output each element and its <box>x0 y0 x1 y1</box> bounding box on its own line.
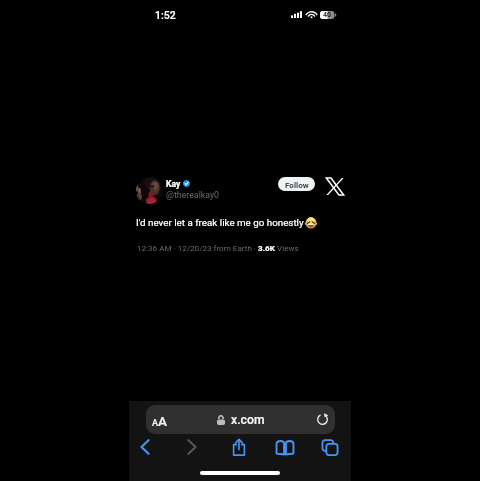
staticText: A <box>152 418 158 429</box>
button[interactable]: Tabs <box>319 436 341 458</box>
staticText: @therealkay0 <box>166 190 220 200</box>
staticText: A <box>158 413 167 429</box>
staticText: 3.6K <box>258 243 275 251</box>
button[interactable]: Reload <box>316 413 329 426</box>
staticText: x.com <box>225 413 265 427</box>
button[interactable]: Back <box>134 436 156 458</box>
staticText: Follow <box>285 180 309 189</box>
button[interactable]: X <box>326 178 344 195</box>
staticText: 1:52 <box>155 9 176 21</box>
button[interactable]: Follow <box>278 177 315 191</box>
button[interactable]: A <box>146 405 335 434</box>
button[interactable]: Forward <box>181 436 203 458</box>
button[interactable]: Share <box>228 436 250 458</box>
staticText: Kay <box>166 179 181 189</box>
staticText: Views <box>275 243 299 251</box>
staticText: 40 <box>323 11 332 19</box>
staticText: I'd never let a freak like me go honestl… <box>136 217 304 228</box>
staticText: 12:36 AM · 12/20/23 from Earth · <box>137 243 258 251</box>
button[interactable]: Bookmarks <box>274 436 296 458</box>
